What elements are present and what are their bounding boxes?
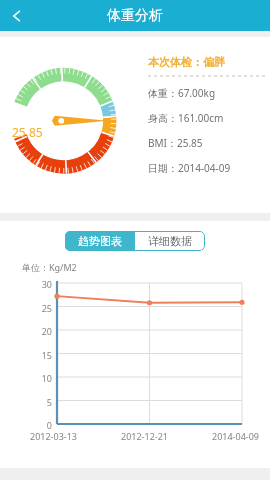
staticText: 2012-03-13	[30, 430, 77, 442]
staticText: 详细数据	[148, 234, 192, 248]
staticText: 趋势图表	[78, 234, 122, 248]
staticText: 身高：161.00cm	[148, 111, 224, 125]
button[interactable]: 趋势图表	[65, 231, 135, 251]
staticText: 5	[30, 396, 52, 408]
staticText: 20	[30, 325, 52, 337]
staticText: 日期：2014-04-09	[148, 161, 231, 175]
staticText: 2014-04-09	[212, 430, 259, 442]
staticText: BMI：25.85	[148, 136, 203, 150]
staticText: 25	[30, 302, 52, 314]
staticText: 15	[30, 349, 52, 361]
staticText: 2012-12-21	[121, 430, 168, 442]
staticText: 10	[30, 372, 52, 384]
staticText: 单位：Kg/M2	[22, 261, 77, 273]
button[interactable]: Back	[0, 0, 34, 31]
staticText: 25.85	[12, 124, 43, 140]
staticText: 体重分析	[107, 7, 163, 25]
button[interactable]: 详细数据	[135, 231, 205, 251]
staticText: 0	[30, 419, 52, 431]
staticText: 体重：67.00kg	[148, 86, 216, 100]
staticText: 本次体检：偏胖	[148, 55, 225, 69]
staticText: 30	[30, 278, 52, 290]
